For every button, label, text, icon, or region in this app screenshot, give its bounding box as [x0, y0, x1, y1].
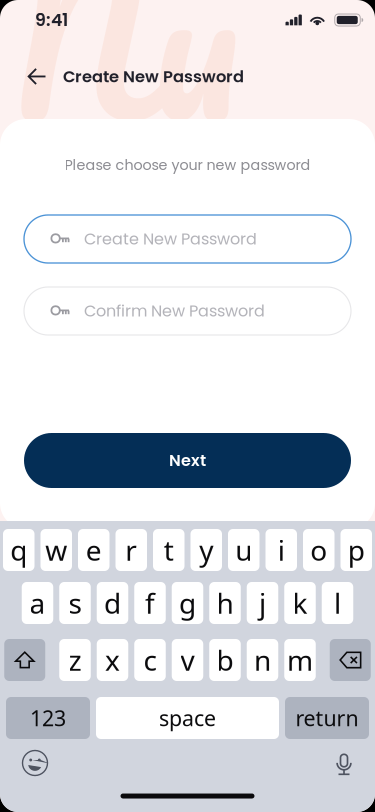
staticText: q: [10, 531, 27, 569]
button[interactable]: Shift: [4, 639, 45, 681]
staticText: x: [105, 641, 120, 679]
staticText: 9:41: [35, 8, 68, 32]
button[interactable]: n: [247, 639, 278, 681]
button[interactable]: space: [96, 697, 279, 739]
staticText: 123: [30, 704, 66, 732]
button[interactable]: Back: [18, 57, 56, 95]
staticText: g: [179, 584, 196, 622]
staticText: Next: [169, 449, 206, 472]
staticText: Please choose your new password: [64, 155, 310, 175]
button[interactable]: d: [97, 582, 128, 624]
button[interactable]: p: [340, 529, 372, 571]
button[interactable]: s: [59, 582, 91, 624]
staticText: space: [159, 704, 216, 732]
button[interactable]: 123: [6, 697, 90, 739]
button[interactable]: r: [115, 529, 147, 571]
button[interactable]: Dictate: [322, 746, 366, 782]
staticText: i: [278, 531, 285, 569]
staticText: Create New Password: [63, 65, 244, 88]
button[interactable]: Delete: [330, 639, 371, 681]
staticText: Confirm New Password: [84, 300, 265, 322]
staticText: e: [86, 531, 102, 569]
button[interactable]: k: [284, 582, 316, 624]
button[interactable]: l: [322, 582, 353, 624]
staticText: a: [29, 584, 45, 622]
staticText: Create New Password: [84, 228, 257, 250]
button[interactable]: f: [134, 582, 166, 624]
button[interactable]: w: [40, 529, 72, 571]
staticText: o: [310, 531, 327, 569]
staticText: y: [199, 531, 213, 569]
button[interactable]: return: [285, 697, 369, 739]
button[interactable]: o: [303, 529, 334, 571]
staticText: Mu: [0, 0, 239, 208]
button[interactable]: Create New Password: [24, 215, 351, 263]
button[interactable]: t: [153, 529, 184, 571]
staticText: f: [145, 584, 155, 622]
staticText: t: [164, 531, 174, 569]
button[interactable]: a: [22, 582, 53, 624]
staticText: j: [259, 584, 266, 622]
button[interactable]: z: [59, 639, 91, 681]
button[interactable]: c: [134, 639, 166, 681]
staticText: l: [334, 584, 341, 622]
button[interactable]: j: [247, 582, 278, 624]
staticText: u: [235, 531, 252, 569]
button[interactable]: u: [228, 529, 259, 571]
staticText: c: [143, 641, 156, 679]
button[interactable]: y: [190, 529, 222, 571]
button[interactable]: b: [209, 639, 241, 681]
button[interactable]: q: [3, 529, 34, 571]
button[interactable]: m: [284, 639, 316, 681]
staticText: d: [104, 584, 121, 622]
staticText: s: [68, 584, 81, 622]
staticText: n: [254, 641, 271, 679]
button[interactable]: Confirm New Password: [24, 287, 351, 335]
button[interactable]: g: [172, 582, 203, 624]
staticText: v: [180, 641, 194, 679]
button[interactable]: v: [172, 639, 203, 681]
button[interactable]: i: [265, 529, 297, 571]
button[interactable]: Next: [24, 433, 351, 488]
staticText: z: [68, 641, 81, 679]
staticText: return: [295, 704, 358, 732]
button[interactable]: Emoji: [14, 746, 58, 782]
staticText: m: [287, 641, 313, 679]
staticText: b: [216, 641, 233, 679]
staticText: r: [125, 531, 137, 569]
button[interactable]: h: [209, 582, 241, 624]
staticText: p: [348, 531, 365, 569]
staticText: h: [216, 584, 233, 622]
staticText: w: [45, 531, 67, 569]
button[interactable]: e: [78, 529, 109, 571]
button[interactable]: x: [97, 639, 128, 681]
staticText: k: [292, 584, 307, 622]
